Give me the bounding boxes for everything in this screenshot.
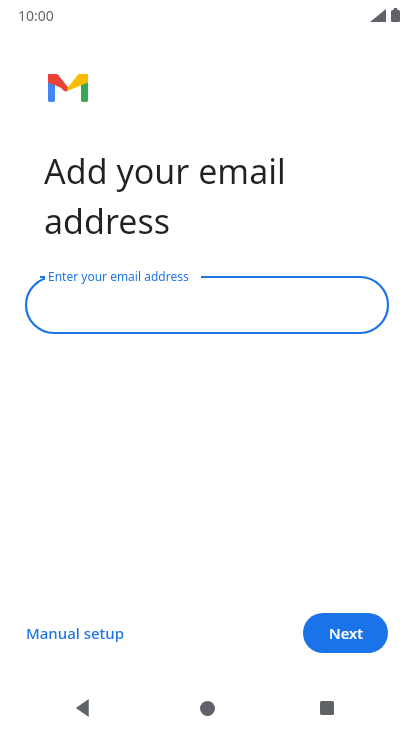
button[interactable]: Next: [303, 613, 388, 653]
button[interactable]: Back: [59, 684, 107, 732]
button[interactable]: Enter your email address: [26, 269, 388, 335]
button[interactable]: Recent apps: [303, 684, 351, 732]
staticText: Manual setup: [26, 623, 125, 643]
staticText: 10:00: [18, 6, 54, 25]
button[interactable]: Manual setup: [26, 617, 125, 649]
staticText: Enter your email address: [48, 268, 189, 284]
staticText: Next: [329, 623, 363, 643]
staticText: Add your email address: [44, 148, 286, 244]
button[interactable]: Home: [183, 684, 231, 732]
